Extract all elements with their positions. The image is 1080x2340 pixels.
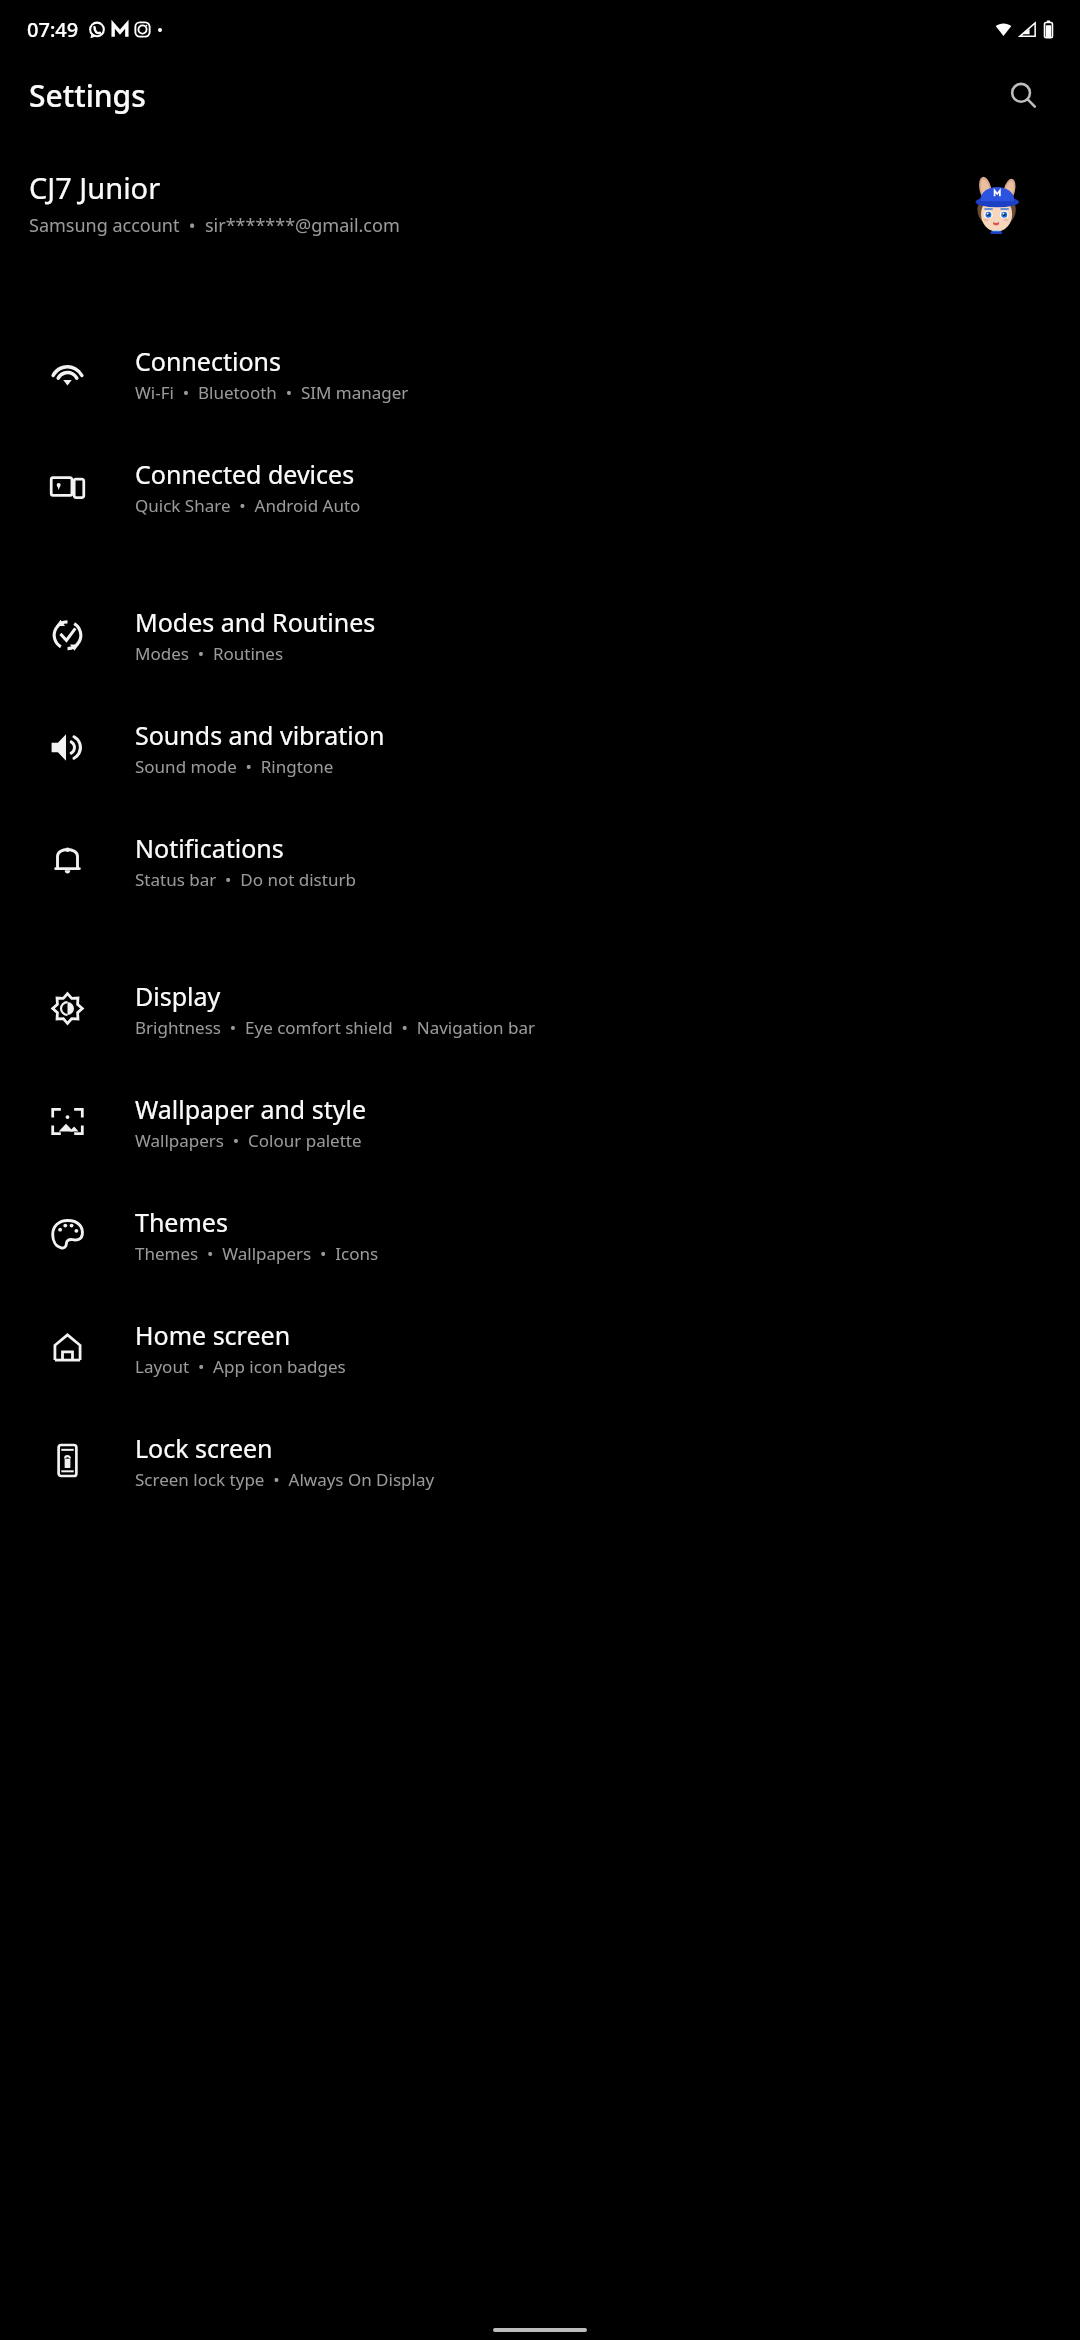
staticText: Themes • Wallpapers • Icons [135,1242,379,1265]
staticText: Notifications [135,831,284,865]
button[interactable]: Connections [0,317,1080,430]
staticText: Status bar • Do not disturb [135,868,356,891]
staticText: Sound mode • Ringtone [135,755,334,778]
staticText: Modes • Routines [135,642,284,665]
staticText: Layout • App icon badges [135,1355,346,1378]
staticText: Samsung account • sir*******@gmail.com [29,213,400,238]
staticText: Brightness • Eye comfort shield • Naviga… [135,1016,535,1039]
button[interactable]: Search settings [1001,73,1045,117]
staticText: Settings [29,75,146,116]
staticText: Quick Share • Android Auto [135,494,361,517]
staticText: Lock screen [135,1431,273,1465]
staticText: Connections [135,344,281,378]
staticText: Themes [135,1205,228,1239]
button[interactable]: Modes and Routines [0,578,1080,691]
button[interactable]: Home screen [0,1291,1080,1404]
button[interactable]: Lock screen [0,1404,1080,1517]
button[interactable]: Wallpaper and style [0,1065,1080,1178]
staticText: Wi-Fi • Bluetooth • SIM manager [135,381,409,404]
staticText: Display [135,979,221,1013]
staticText: Screen lock type • Always On Display [135,1468,435,1491]
button[interactable]: Themes [0,1178,1080,1291]
staticText: Modes and Routines [135,605,376,639]
button[interactable]: Sounds and vibration [0,691,1080,804]
button[interactable]: Display [0,952,1080,1065]
staticText: Sounds and vibration [135,718,385,752]
button[interactable]: Notifications [0,804,1080,917]
staticText: 07:49 [27,16,79,43]
staticText: Wallpaper and style [135,1092,367,1126]
button[interactable]: Connected devices [0,430,1080,543]
staticText: Home screen [135,1318,291,1352]
button[interactable]: CJ7 Junior [0,132,1080,274]
staticText: Connected devices [135,457,355,491]
staticText: Wallpapers • Colour palette [135,1129,362,1152]
staticText: CJ7 Junior [29,168,161,207]
